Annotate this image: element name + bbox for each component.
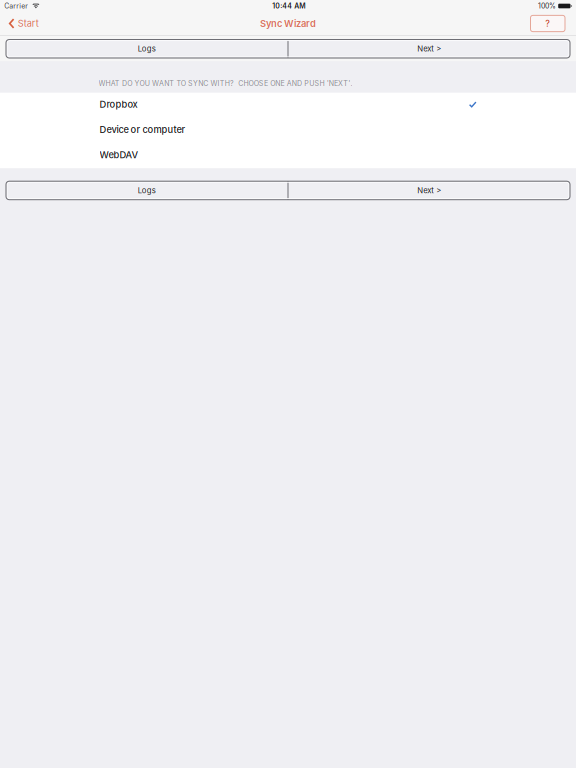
button[interactable]: WebDAV — [0, 143, 576, 168]
staticText: 10:44 AM — [272, 2, 305, 10]
staticText: Carrier — [4, 2, 28, 10]
button[interactable]: Dropbox — [0, 93, 576, 118]
staticText: Logs — [138, 44, 156, 53]
staticText: ? — [545, 18, 550, 29]
staticText: WHAT DO YOU WANT TO SYNC WITH? CHOOSE ON… — [98, 79, 352, 88]
staticText: Sync Wizard — [260, 18, 316, 29]
button[interactable]: Start — [0, 12, 45, 35]
button[interactable]: Help — [530, 15, 565, 32]
staticText: Logs — [138, 186, 156, 195]
staticText: Device or computer — [99, 124, 185, 135]
button[interactable]: Next > — [288, 39, 570, 58]
staticText: WebDAV — [99, 149, 138, 160]
button[interactable]: Logs — [6, 39, 287, 58]
staticText: Next > — [417, 186, 441, 195]
button[interactable]: Next > — [288, 181, 570, 200]
staticText: Next > — [417, 44, 441, 53]
button[interactable]: Device or computer — [0, 118, 576, 143]
staticText: Dropbox — [99, 99, 137, 110]
staticText: Start — [18, 18, 39, 29]
staticText: 100% — [538, 2, 556, 10]
button[interactable]: Logs — [6, 181, 287, 200]
